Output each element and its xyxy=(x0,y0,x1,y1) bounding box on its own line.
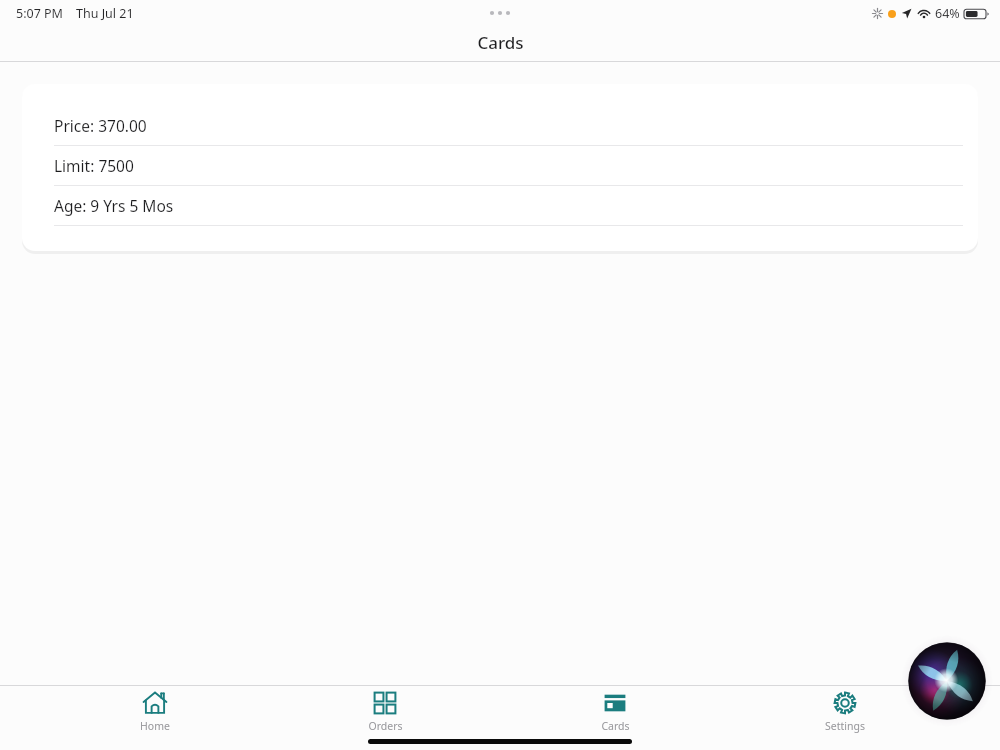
staticText: Limit: 7500 xyxy=(54,155,134,176)
button[interactable]: Limit: 7500 xyxy=(22,146,978,186)
staticText: 64% xyxy=(935,5,960,22)
staticText: Price: 370.00 xyxy=(54,115,147,136)
button[interactable]: Cards xyxy=(540,686,690,733)
other: Home xyxy=(142,690,168,716)
staticText: Age: 9 Yrs 5 Mos xyxy=(54,195,174,216)
staticText: Orders xyxy=(368,719,403,733)
staticText: Thu Jul 21 xyxy=(76,5,134,22)
staticText: 5:07 PM xyxy=(16,5,63,22)
staticText: Home xyxy=(140,719,170,733)
button[interactable]: Settings xyxy=(770,686,920,733)
staticText: Cards xyxy=(601,719,630,733)
other: Orders xyxy=(372,690,398,716)
button[interactable]: Siri xyxy=(907,641,987,721)
button[interactable]: Home xyxy=(80,686,230,733)
staticText: Settings xyxy=(825,719,865,733)
other: Settings xyxy=(832,690,858,716)
button[interactable]: Age: 9 Yrs 5 Mos xyxy=(22,186,978,226)
other: Cards xyxy=(602,690,628,716)
button[interactable]: Price: 370.00 xyxy=(22,106,978,146)
button[interactable]: Orders xyxy=(310,686,460,733)
staticText: Cards xyxy=(477,31,524,54)
